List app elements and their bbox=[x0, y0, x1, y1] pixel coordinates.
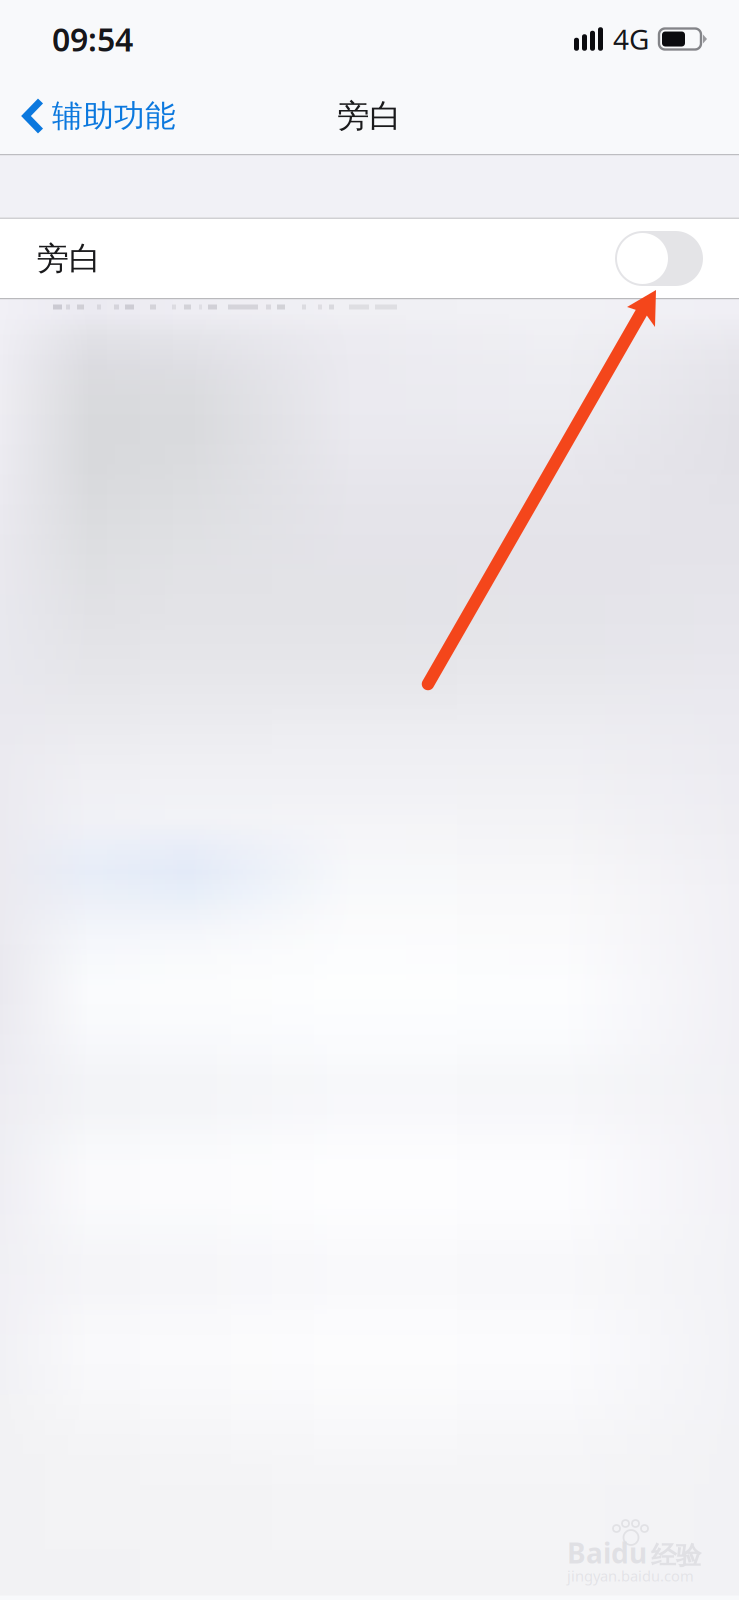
staticText: 4G bbox=[613, 20, 649, 58]
button[interactable]: 辅助功能 bbox=[0, 78, 190, 154]
button[interactable]: 旁白 bbox=[0, 219, 739, 298]
staticText: 旁白 bbox=[337, 96, 401, 136]
staticText: 09:54 bbox=[52, 18, 133, 60]
staticText: jingyan.baidu.com bbox=[567, 1566, 694, 1585]
staticText: 旁白 bbox=[37, 239, 101, 278]
staticText: 经验 bbox=[651, 1540, 701, 1571]
staticText: Baidu bbox=[567, 1534, 647, 1571]
staticText: 辅助功能 bbox=[52, 97, 176, 135]
